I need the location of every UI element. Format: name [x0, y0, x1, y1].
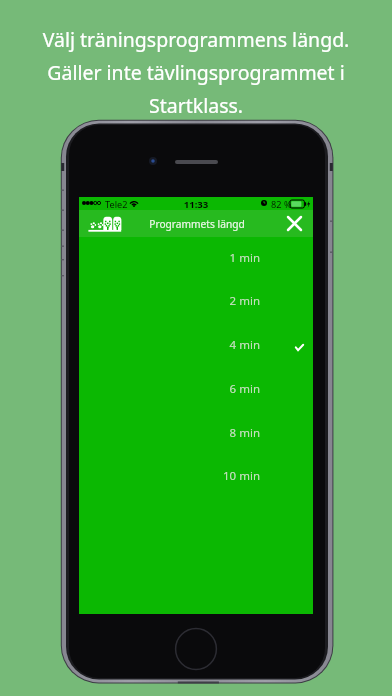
button[interactable]: Home: [79, 210, 129, 237]
staticText: 82 %: [271, 198, 292, 211]
staticText: 10 min: [79, 468, 260, 484]
button[interactable]: 2 min: [79, 279, 313, 323]
staticText: 11:33: [79, 198, 313, 211]
button[interactable]: 4 min: [79, 323, 313, 367]
button[interactable]: 8 min: [79, 411, 313, 455]
button[interactable]: Home button: [175, 628, 217, 670]
staticText: 8 min: [79, 425, 260, 441]
button[interactable]: Close: [278, 210, 310, 237]
staticText: 1 min: [79, 250, 260, 266]
button[interactable]: 1 min: [79, 236, 313, 280]
staticText: Programmets längd: [80, 217, 314, 231]
staticText: Tele2: [105, 198, 128, 211]
staticText: Välj träningsprogrammens längd. Gäller i…: [0, 26, 392, 119]
button[interactable]: 6 min: [79, 367, 313, 411]
staticText: 4 min: [79, 337, 260, 353]
button[interactable]: 10 min: [79, 454, 313, 498]
staticText: 2 min: [79, 293, 260, 309]
staticText: 6 min: [79, 381, 260, 397]
